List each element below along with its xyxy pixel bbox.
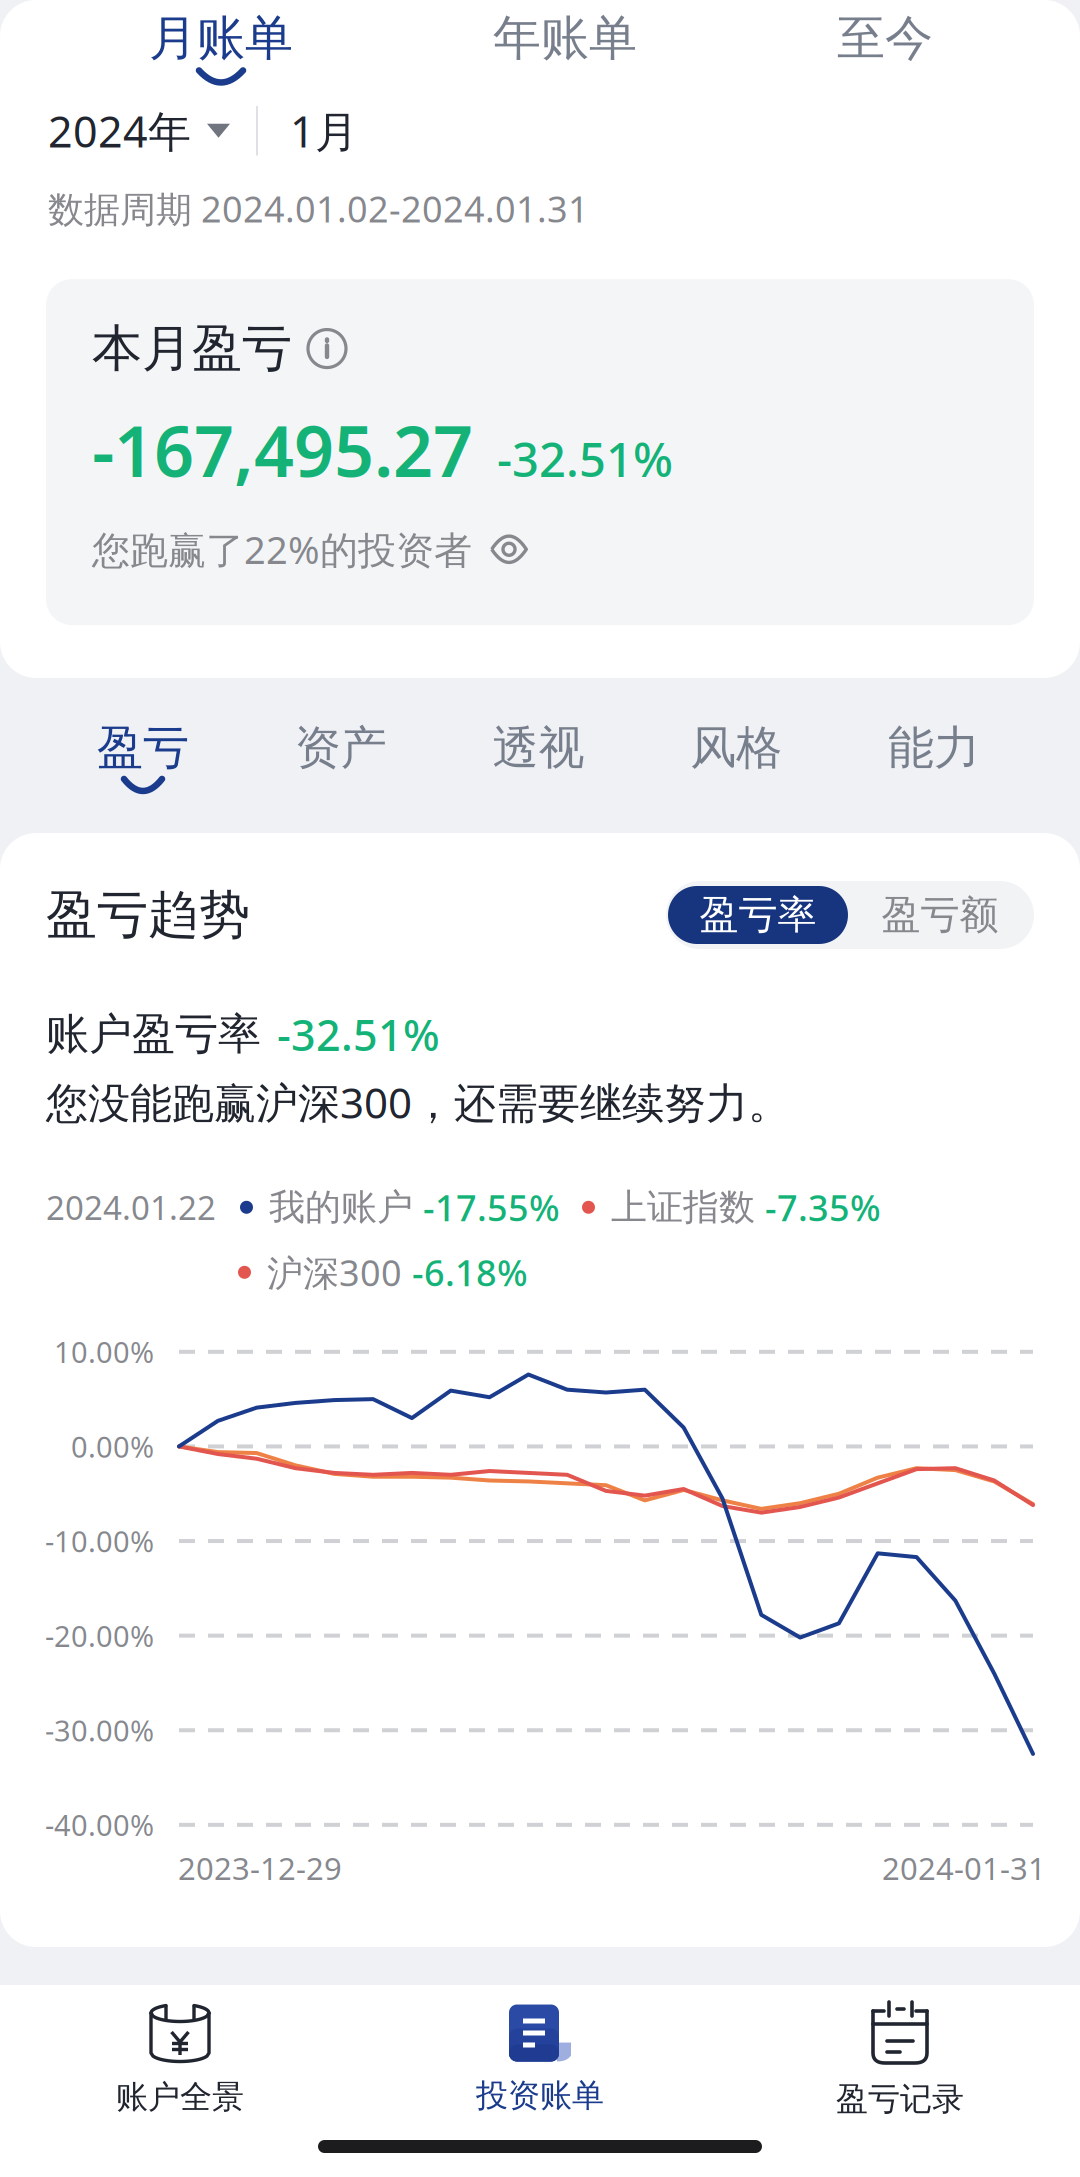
staticText: 沪深300 bbox=[267, 1248, 402, 1297]
staticText: -17.55% bbox=[423, 1183, 560, 1232]
staticText: 能力 bbox=[888, 719, 980, 777]
button[interactable]: 资产 bbox=[295, 719, 387, 792]
staticText: 盈亏 bbox=[97, 719, 189, 777]
staticText: -6.18% bbox=[412, 1248, 528, 1297]
staticText: 数据周期 2024.01.02-2024.01.31 bbox=[48, 184, 589, 233]
staticText: 风格 bbox=[690, 719, 782, 777]
staticText: 年账单 bbox=[493, 8, 637, 68]
staticText: 至今 bbox=[837, 8, 933, 68]
staticText: -7.35% bbox=[765, 1183, 881, 1232]
staticText: 您跑赢了22%的投资者 bbox=[92, 523, 472, 575]
staticText: 投资账单 bbox=[476, 2075, 604, 2116]
staticText: -40.00% bbox=[45, 1805, 154, 1845]
staticText: 资产 bbox=[295, 719, 387, 777]
button[interactable]: 至今 bbox=[837, 8, 933, 83]
staticText: 0.00% bbox=[71, 1427, 154, 1466]
staticText: 2023-12-29 bbox=[178, 1847, 342, 1889]
button[interactable]: 2024年 bbox=[48, 101, 230, 160]
staticText: 2024.01.22 bbox=[46, 1185, 216, 1230]
staticText: 本月盈亏 bbox=[92, 317, 292, 380]
staticText: 透视 bbox=[492, 719, 584, 777]
staticText: 2024-01-31 bbox=[882, 1847, 1046, 1889]
staticText: 账户盈亏率 bbox=[46, 1007, 261, 1061]
staticText: 盈亏率 bbox=[699, 890, 816, 939]
staticText: 盈亏趋势 bbox=[46, 883, 250, 947]
staticText: 上证指数 bbox=[611, 1185, 755, 1230]
staticText: -32.51% bbox=[277, 1005, 440, 1064]
staticText: 盈亏额 bbox=[881, 890, 998, 939]
staticText: -20.00% bbox=[45, 1616, 154, 1655]
staticText: 您没能跑赢沪深300，还需要继续努力。 bbox=[46, 1074, 790, 1131]
staticText: 账户全景 bbox=[116, 2077, 244, 2117]
staticText: 月账单 bbox=[149, 8, 293, 68]
button[interactable]: 能力 bbox=[888, 719, 980, 792]
staticText: 10.00% bbox=[54, 1332, 154, 1372]
staticText: -167,495.27 bbox=[92, 402, 473, 497]
staticText: -10.00% bbox=[45, 1521, 154, 1561]
staticText: 盈亏记录 bbox=[836, 2079, 964, 2119]
button[interactable]: 月账单 bbox=[149, 8, 293, 83]
button[interactable]: 盈亏额 bbox=[848, 886, 1032, 944]
button[interactable]: 透视 bbox=[492, 719, 584, 792]
button[interactable]: 风格 bbox=[690, 719, 782, 792]
button[interactable]: 盈亏 bbox=[97, 719, 189, 792]
button[interactable]: 年账单 bbox=[493, 8, 637, 83]
staticText: 1月 bbox=[290, 101, 358, 160]
button[interactable]: 1月 bbox=[290, 101, 358, 160]
button[interactable]: 盈亏记录 bbox=[720, 2001, 1080, 2119]
button[interactable]: 账户全景 bbox=[0, 2003, 360, 2117]
staticText: -30.00% bbox=[45, 1710, 154, 1750]
button[interactable]: 盈亏率 bbox=[668, 886, 848, 944]
button[interactable]: 投资账单 bbox=[360, 2004, 720, 2116]
staticText: 我的账户 bbox=[269, 1185, 413, 1230]
staticText: -32.51% bbox=[497, 427, 673, 491]
staticText: 2024年 bbox=[48, 101, 191, 160]
